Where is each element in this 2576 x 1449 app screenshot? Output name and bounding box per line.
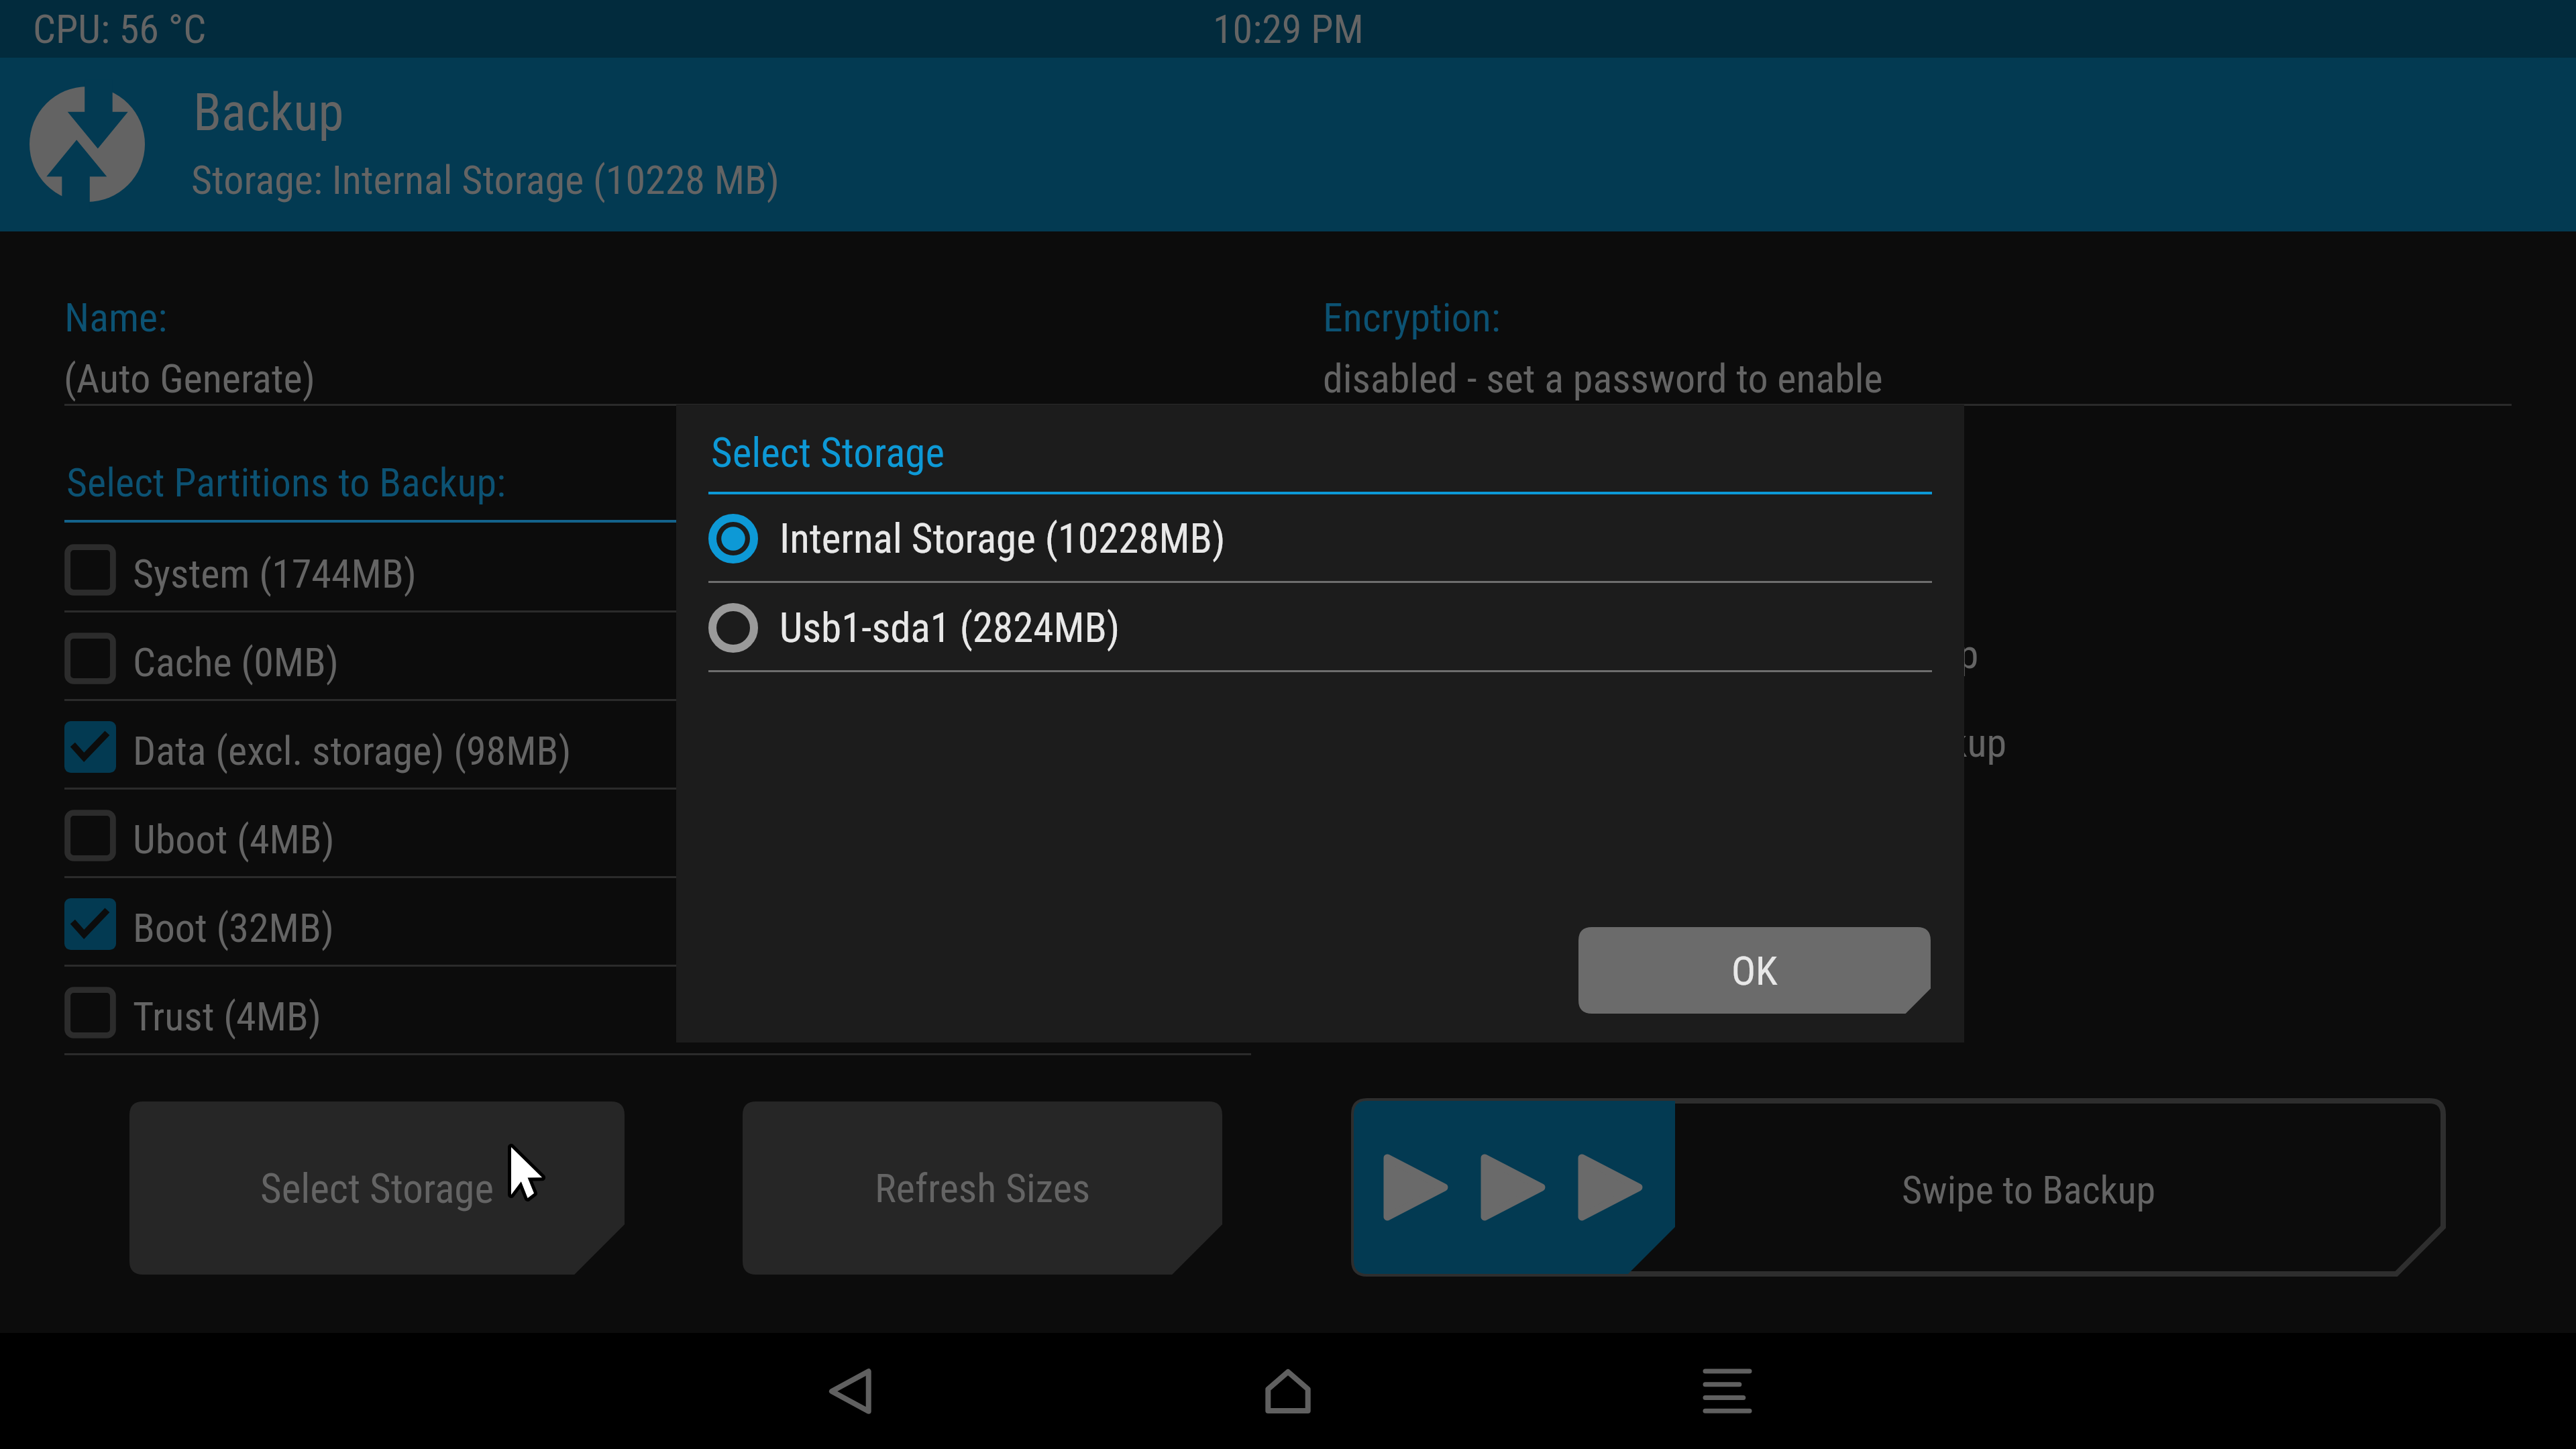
button[interactable]: Uboot (4MB): [64, 790, 1251, 878]
staticText: Uboot (4MB): [133, 816, 335, 863]
staticText: (Auto Generate): [64, 355, 315, 402]
button[interactable]: Boot (32MB): [64, 878, 1251, 967]
staticText: Refresh Sizes: [875, 1165, 1091, 1212]
staticText: Skip MD5 generation during backup: [1416, 631, 1979, 678]
staticText: Skip Digest generation during backup: [1416, 719, 2007, 766]
button[interactable]: Recent apps: [1667, 1333, 1788, 1449]
staticText: Data (excl. storage) (98MB): [133, 727, 572, 774]
staticText: OK: [1731, 947, 1778, 994]
button[interactable]: Skip MD5 generation during backup: [1348, 604, 2086, 693]
button[interactable]: Back: [790, 1333, 910, 1449]
button[interactable]: Data (excl. storage) (98MB): [64, 701, 1251, 790]
button[interactable]: Cache (0MB): [64, 612, 1251, 701]
button[interactable]: Usb1-sda1 (2824MB): [708, 583, 1932, 672]
button[interactable]: Swipe to Backup: [1354, 1101, 2443, 1274]
staticText: 10:29 PM: [1213, 5, 1364, 52]
staticText: Trust (4MB): [133, 993, 321, 1040]
button[interactable]: Skip Digest generation during backup: [1348, 693, 2086, 782]
staticText: Cache (0MB): [133, 639, 339, 686]
staticText: Storage: Internal Storage (10228 MB): [191, 156, 780, 203]
button[interactable]: System (1744MB): [64, 524, 1251, 612]
staticText: disabled - set a password to enable: [1323, 355, 1883, 402]
button[interactable]: Select Storage: [129, 1102, 625, 1275]
staticText: Select Storage: [711, 429, 945, 476]
staticText: Select Partitions to Backup:: [66, 459, 506, 506]
staticText: Boot (32MB): [133, 904, 334, 951]
staticText: Backup: [193, 83, 344, 143]
button[interactable]: OK: [1578, 927, 1931, 1014]
staticText: System (1744MB): [133, 550, 417, 597]
staticText: Enable compression: [1416, 542, 1738, 589]
staticText: Swipe to Backup: [1902, 1167, 2156, 1213]
staticText: Encryption:: [1323, 294, 1501, 341]
staticText: Select Storage: [260, 1165, 494, 1212]
staticText: Internal Storage (10228MB): [780, 515, 1226, 562]
button[interactable]: Internal Storage (10228MB): [708, 494, 1932, 583]
button[interactable]: Enable compression: [1348, 516, 2086, 604]
staticText: Options:: [1324, 459, 1457, 506]
button[interactable]: Home: [1228, 1333, 1348, 1449]
staticText: CPU: 56 °C: [33, 5, 207, 52]
staticText: Usb1-sda1 (2824MB): [780, 604, 1120, 651]
staticText: Name:: [64, 294, 168, 341]
button[interactable]: Trust (4MB): [64, 967, 1251, 1055]
button[interactable]: Refresh Sizes: [743, 1102, 1222, 1275]
